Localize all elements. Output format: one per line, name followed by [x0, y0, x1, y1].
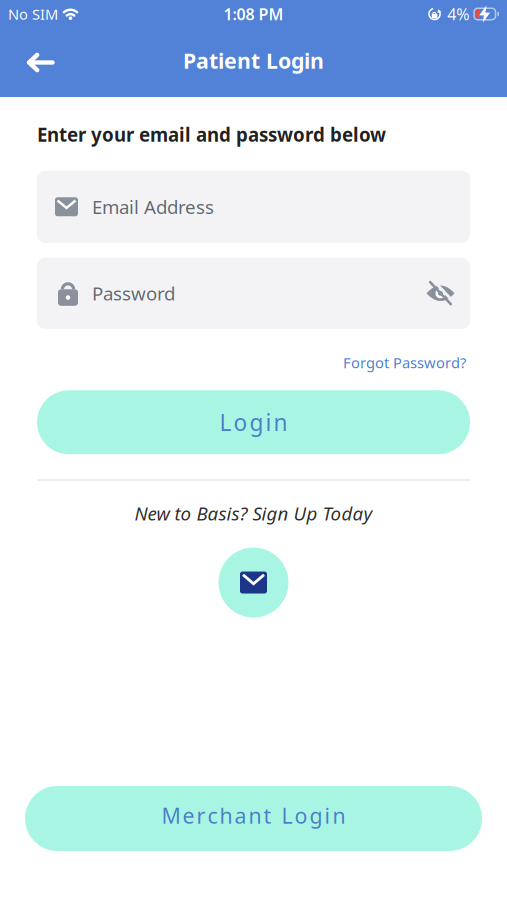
button[interactable]: Back	[0, 37, 55, 87]
button[interactable]: L o g i n	[37, 390, 470, 454]
staticText: Patient Login	[183, 46, 324, 75]
button[interactable]: Show password	[426, 283, 455, 304]
staticText: Enter your email and password below	[37, 122, 386, 147]
staticText: No SIM	[8, 4, 58, 24]
staticText: Password	[92, 281, 175, 306]
button[interactable]: Forgot Password?	[343, 353, 466, 372]
staticText: L o g i n	[219, 407, 287, 437]
button[interactable]: M e r c h a n t L o g i n	[25, 786, 482, 851]
staticText: New to Basis? Sign Up Today	[134, 501, 372, 526]
staticText: Email Address	[92, 194, 214, 219]
staticText: M e r c h a n t L o g i n	[161, 801, 345, 830]
staticText: Forgot Password?	[343, 353, 466, 372]
staticText: 4%	[447, 3, 469, 25]
staticText: 1:08 PM	[223, 3, 283, 25]
button[interactable]: Sign up with email	[218, 548, 288, 618]
